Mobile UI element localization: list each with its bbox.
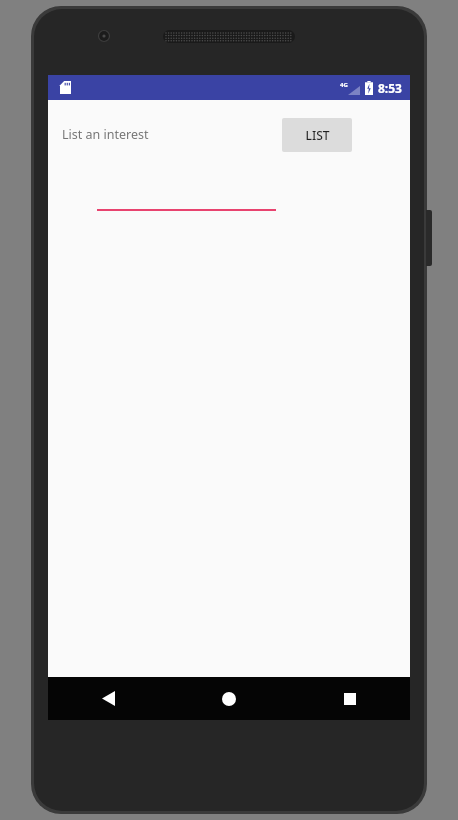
button[interactable]: Recent apps [289, 677, 410, 720]
staticText: 8:53 [378, 80, 402, 96]
staticText: List an interest [62, 126, 149, 143]
button[interactable]: LIST [282, 118, 352, 152]
button[interactable]: Home [168, 677, 289, 720]
staticText: 4G [340, 81, 348, 89]
staticText: LIST [305, 127, 330, 143]
button[interactable]: Back [48, 677, 168, 720]
